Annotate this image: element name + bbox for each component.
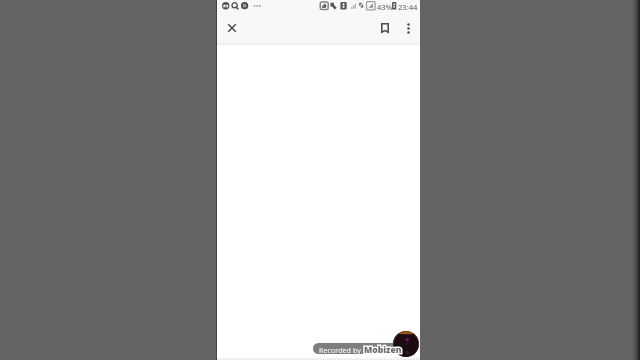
staticText: Mobizen bbox=[364, 344, 402, 356]
staticText: Mobizen bbox=[364, 344, 402, 356]
button[interactable]: Close bbox=[221, 17, 242, 38]
button[interactable]: Bookmark bbox=[375, 18, 395, 38]
staticText: 43% bbox=[377, 2, 393, 12]
button[interactable]: More options bbox=[398, 18, 418, 38]
staticText: 23:44 bbox=[398, 2, 418, 12]
staticText: Recorded by bbox=[319, 345, 361, 355]
